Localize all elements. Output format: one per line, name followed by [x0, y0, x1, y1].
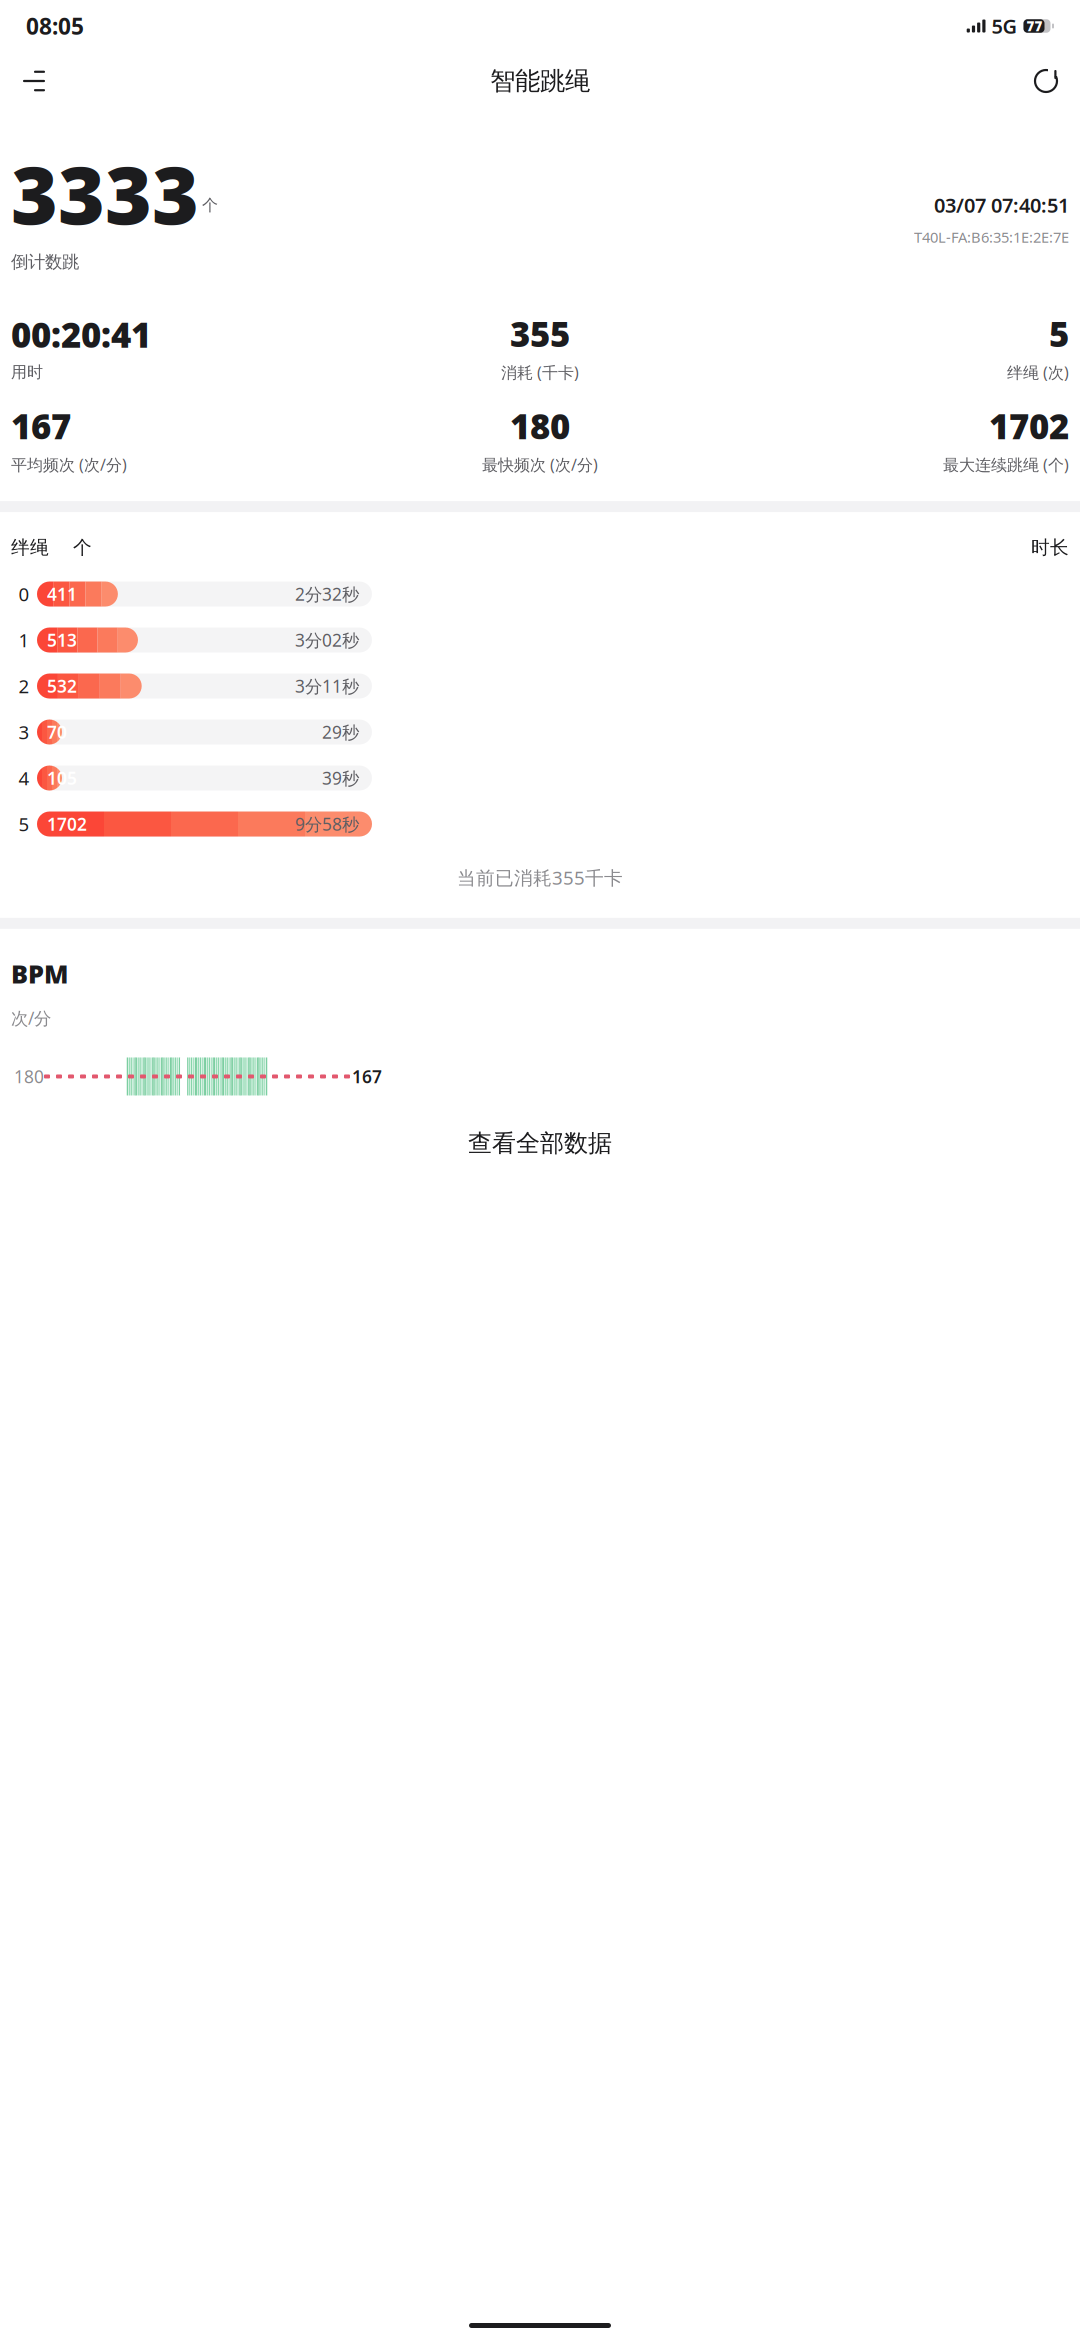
staticText: 29秒 — [322, 720, 359, 743]
staticText: 个 — [73, 536, 92, 559]
staticText: 180 — [14, 1065, 44, 1088]
staticText: 77 — [1026, 17, 1042, 35]
staticText: 3 — [18, 720, 29, 744]
staticText: 2 — [18, 674, 29, 698]
staticText: 用时 — [11, 362, 43, 382]
staticText: 00:20:41 — [11, 311, 151, 357]
staticText: 411 — [47, 582, 77, 605]
button[interactable]: 查看全部数据 — [0, 1115, 1080, 1171]
staticText: 03/07 07:40:51 — [934, 192, 1069, 218]
staticText: 3分11秒 — [295, 674, 359, 697]
staticText: 3333 — [11, 140, 199, 246]
staticText: 9分58秒 — [295, 812, 359, 835]
staticText: 查看全部数据 — [468, 1128, 612, 1158]
staticText: 167 — [352, 1065, 382, 1088]
staticText: 355 — [510, 310, 570, 356]
staticText: 平均频次 (次/分) — [11, 454, 127, 475]
staticText: 次/分 — [11, 1006, 51, 1029]
button[interactable]: 刷新 — [1023, 58, 1069, 104]
staticText: 2分32秒 — [295, 582, 359, 605]
staticText: 1702 — [989, 403, 1069, 449]
staticText: 绊绳 — [11, 536, 49, 559]
staticText: 39秒 — [322, 766, 359, 789]
staticText: 0 — [18, 582, 29, 606]
staticText: 1702 — [47, 812, 87, 835]
staticText: 时长 — [1031, 536, 1069, 559]
staticText: 105 — [47, 766, 77, 789]
staticText: 5G — [991, 13, 1017, 39]
staticText: 绊绳 (次) — [1007, 362, 1069, 383]
staticText: 532 — [47, 674, 77, 697]
staticText: 当前已消耗355千卡 — [457, 865, 623, 890]
staticText: 167 — [11, 403, 71, 449]
staticText: 个 — [202, 195, 218, 215]
staticText: 180 — [510, 403, 570, 449]
staticText: 倒计数跳 — [11, 251, 79, 272]
staticText: 最快频次 (次/分) — [482, 454, 598, 475]
staticText: 消耗 (千卡) — [501, 362, 579, 383]
staticText: 最大连续跳绳 (个) — [943, 454, 1069, 475]
staticText: 08:05 — [26, 11, 84, 41]
staticText: T40L-FA:B6:35:1E:2E:7E — [914, 227, 1069, 247]
staticText: BPM — [11, 957, 68, 990]
staticText: 70 — [47, 720, 67, 743]
button[interactable]: 返回 — [11, 58, 57, 104]
staticText: 5 — [18, 812, 29, 836]
staticText: 513 — [47, 628, 77, 651]
staticText: 1 — [18, 628, 29, 652]
staticText: 3分02秒 — [295, 628, 359, 651]
staticText: 5 — [1049, 310, 1069, 356]
staticText: 4 — [18, 766, 29, 790]
staticText: 智能跳绳 — [490, 65, 590, 96]
